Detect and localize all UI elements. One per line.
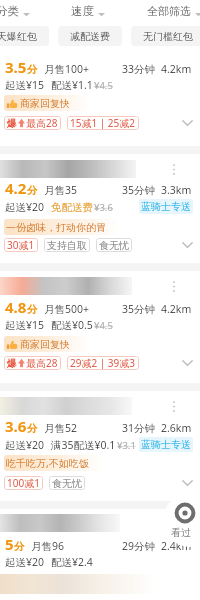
staticText: 4.2 [5,178,27,198]
staticText: 满35配送¥0.1 [51,438,116,452]
staticText: 33分钟 [122,62,156,76]
button[interactable]: 商家回复快 [4,95,90,111]
staticText: 商家回复快 [20,338,70,351]
button[interactable]: 减配送费 [58,26,122,46]
button[interactable]: 食无忧 [49,476,85,490]
staticText: 免配送费 [51,201,93,214]
button[interactable]: 爆 [4,116,61,130]
staticText: 29分钟 [122,539,156,553]
button[interactable]: 15减1 | 25减2 [67,116,139,130]
staticText: 100减1 [7,476,40,490]
staticText: ¥4.5 [94,79,113,92]
button[interactable]: 全部筛选 [147,0,200,22]
button[interactable]: Expand [182,360,193,366]
button[interactable]: 看过 viewed [163,493,200,547]
staticText: 30减1 [7,238,35,252]
button[interactable]: Expand [182,242,193,248]
button[interactable]: More options [172,401,176,412]
button[interactable]: 吃千吃万,不如吃饭 [4,455,104,471]
staticText: 全部筛选 [147,4,191,18]
button[interactable]: 速度 [71,0,105,22]
staticText: 爆 [7,357,17,370]
staticText: 蓝骑士专送 [141,200,191,213]
staticText: 减配送费 [70,30,110,43]
staticText: 最高28 [26,116,58,130]
staticText: 月售96 [31,539,65,553]
staticText: 3.6 [5,416,27,436]
staticText: 爆 [7,117,17,130]
staticText: 最高28 [26,356,58,370]
staticText: 配送¥0.5 [51,318,93,332]
button[interactable]: 5 [0,509,200,594]
staticText: 分 [27,63,38,76]
staticText: 速度 [71,4,94,18]
staticText: 配送¥1.1 [51,78,93,92]
staticText: 35分钟 [122,183,156,197]
staticText: 天天爆红包 [0,30,37,43]
button[interactable]: More options [0,391,200,501]
staticText: 4.2km [161,302,192,316]
staticText: 2.4km [161,539,192,553]
staticText: 起送¥15 [5,78,45,92]
staticText: 一份卤味，打动你的胃 [6,221,106,234]
staticText: 蓝骑士专送 [141,438,191,451]
button[interactable]: 一份卤味，打动你的胃 [4,219,120,235]
button[interactable]: 3.5 [0,48,200,146]
button[interactable]: 商家回复快 [4,336,90,352]
staticText: 吃千吃万,不如吃饭 [6,456,89,470]
staticText: 29减2 | 39减3 [70,356,136,370]
staticText: 起送¥20 [5,200,45,214]
staticText: 分 [27,422,38,435]
staticText: 15减1 | 25减2 [70,116,136,130]
staticText: 3.5 [5,57,27,77]
staticText: 配送¥2.4 [51,555,93,569]
staticText: 35分钟 [122,302,156,316]
staticText: 食无忧 [52,477,82,490]
staticText: 月售500+ [44,302,90,316]
staticText: ¥4.5 [94,319,113,332]
staticText: 无门槛红包 [143,30,193,43]
staticText: ¥3.6 [94,201,113,214]
staticText: 分 [27,184,38,197]
staticText: 分 [27,303,38,316]
staticText: 商家回复快 [20,97,70,110]
staticText: 31分钟 [122,421,156,435]
staticText: 4.2km [161,62,192,76]
staticText: 分类 [0,4,19,18]
staticText: 2.6km [161,421,192,435]
staticText: 月售52 [44,421,78,435]
staticText: 5 [5,534,14,554]
staticText: 食无忧 [99,239,129,252]
button[interactable]: 食无忧 [96,238,132,252]
button[interactable]: 分类 [0,0,30,22]
staticText: ¥3.1 [117,439,136,452]
button[interactable]: Expand [182,480,193,486]
staticText: 起送¥20 [5,555,45,569]
staticText: 月售100+ [44,62,90,76]
staticText: 4.8 [5,297,27,317]
button[interactable]: 30减1 [4,238,38,252]
staticText: 支持自取 [47,239,87,252]
button[interactable]: More options [0,154,200,263]
staticText: 起送¥15 [5,318,45,332]
button[interactable]: More options [172,281,176,292]
staticText: 3.3km [161,183,192,197]
button[interactable]: More options [172,164,176,175]
staticText: 分 [14,540,25,553]
button[interactable]: 100减1 [4,476,43,490]
staticText: 看过 [171,526,191,539]
button[interactable]: 天天爆红包 [0,26,49,46]
button[interactable]: More options [0,271,200,383]
button[interactable]: 无门槛红包 [131,26,200,46]
button[interactable]: 爆 [4,356,61,370]
button[interactable]: Expand [182,120,193,126]
staticText: 月售35 [44,183,78,197]
button[interactable]: 29减2 | 39减3 [67,356,139,370]
button[interactable]: 支持自取 [44,238,90,252]
staticText: 起送¥20 [5,438,45,452]
